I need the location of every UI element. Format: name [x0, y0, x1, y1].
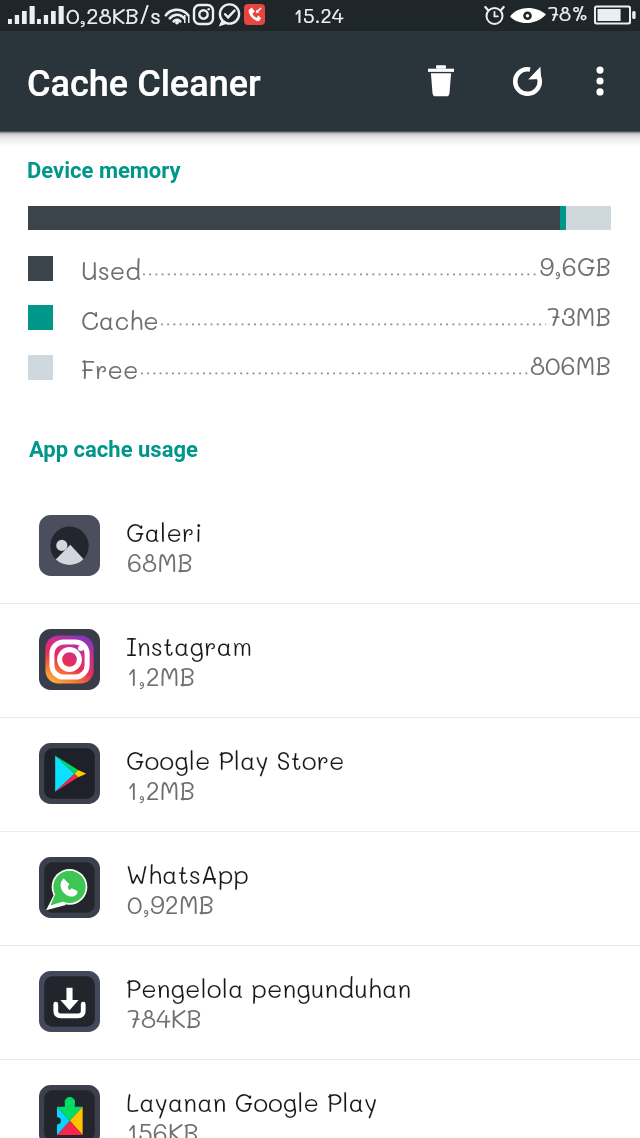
- staticText: Instagram: [126, 630, 253, 662]
- staticText: Layanan Google Play: [126, 1086, 378, 1118]
- staticText: Cache: [81, 304, 159, 336]
- staticText: 9,6GB: [430, 250, 611, 282]
- staticText: WhatsApp: [126, 858, 249, 890]
- button[interactable]: Instagram: [0, 603, 640, 717]
- button[interactable]: More options: [570, 51, 630, 111]
- staticText: 15.24: [294, 2, 344, 28]
- button[interactable]: Google Play Store: [0, 717, 640, 831]
- staticText: 1,2MB: [127, 774, 196, 806]
- button[interactable]: Pengelola pengunduhan: [0, 945, 640, 1059]
- button[interactable]: WhatsApp: [0, 831, 640, 945]
- staticText: 0,28KB/s: [66, 1, 161, 30]
- staticText: 78%: [548, 0, 589, 26]
- staticText: Pengelola pengunduhan: [126, 972, 412, 1004]
- staticText: 0,92MB: [127, 888, 215, 920]
- staticText: 68MB: [127, 546, 193, 578]
- staticText: 73MB: [430, 300, 611, 332]
- button[interactable]: Galeri: [0, 489, 640, 603]
- staticText: Google Play Store: [126, 744, 345, 776]
- staticText: Used: [81, 254, 142, 286]
- staticText: Free: [81, 353, 139, 385]
- staticText: 784KB: [127, 1002, 202, 1034]
- staticText: App cache usage: [29, 437, 198, 463]
- staticText: Cache Cleaner: [27, 63, 261, 105]
- staticText: Device memory: [27, 158, 181, 184]
- button[interactable]: Layanan Google Play: [0, 1059, 640, 1138]
- staticText: 156KB: [127, 1116, 199, 1138]
- staticText: Galeri: [126, 516, 203, 548]
- staticText: 1,2MB: [127, 660, 196, 692]
- button[interactable]: Refresh: [493, 47, 561, 115]
- button[interactable]: Clear cache: [407, 47, 475, 115]
- staticText: 806MB: [430, 349, 611, 381]
